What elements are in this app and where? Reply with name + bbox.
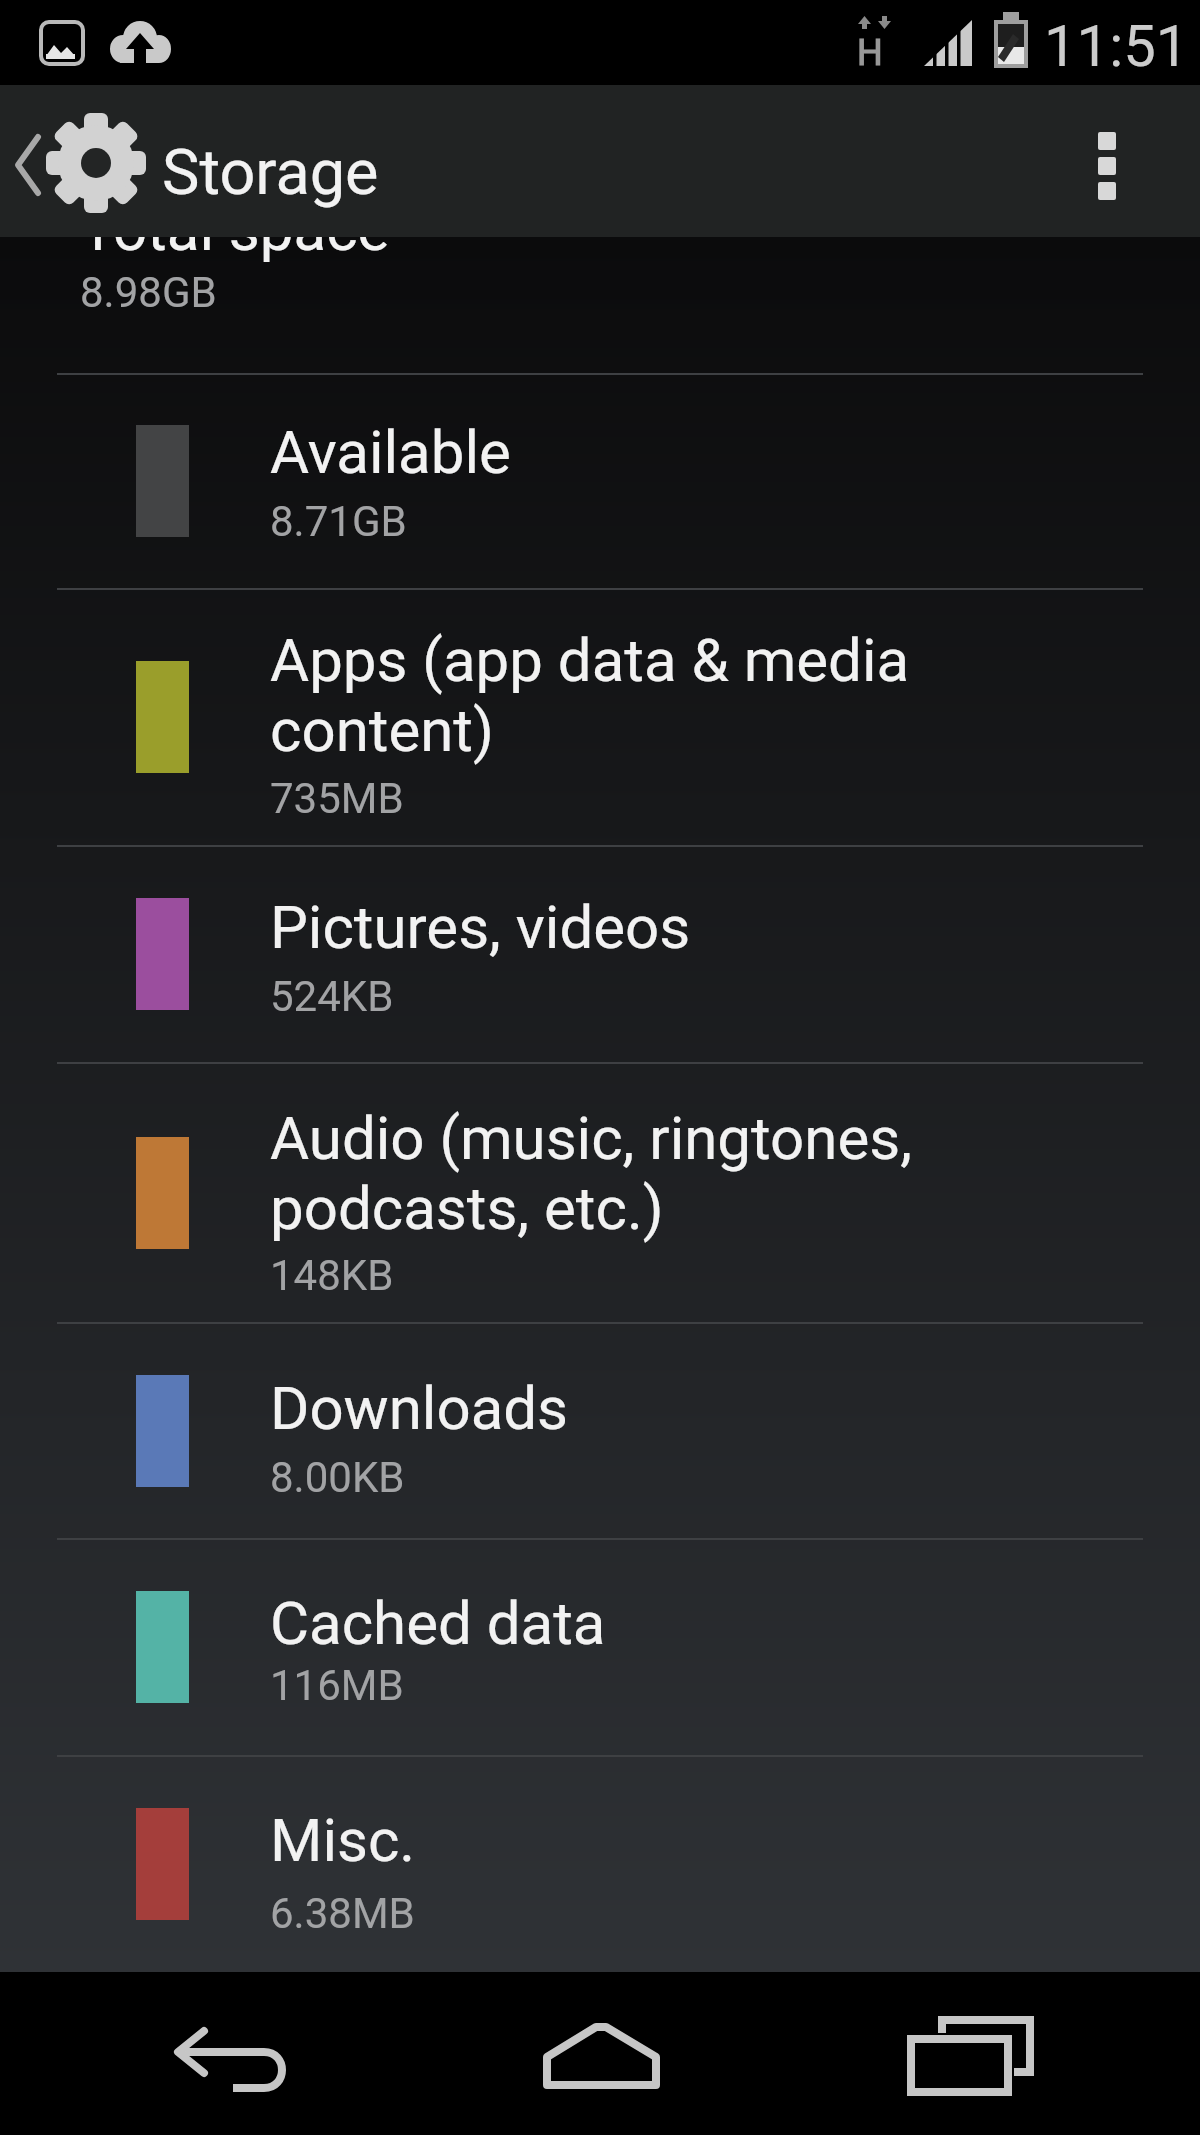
button[interactable]: Misc. <box>0 1757 1200 1972</box>
button[interactable]: Audio (music, ringtones, <box>0 1064 1200 1322</box>
staticText: Storage <box>162 136 379 210</box>
staticText: Total space <box>80 237 390 264</box>
button[interactable]: Pictures, videos <box>0 847 1200 1062</box>
staticText: 6.38MB <box>270 1889 415 1938</box>
button[interactable]: Downloads <box>0 1324 1200 1538</box>
staticText: Downloads <box>270 1373 569 1443</box>
staticText: 8.98GB <box>80 268 217 317</box>
button[interactable] <box>540 2020 664 2092</box>
staticText: Pictures, videos <box>270 892 691 962</box>
button[interactable] <box>1076 115 1138 215</box>
button[interactable] <box>170 2020 300 2100</box>
staticText: Available <box>270 417 511 487</box>
button[interactable] <box>905 2014 1035 2104</box>
button[interactable]: Cached data <box>0 1540 1200 1755</box>
button[interactable]: Available <box>0 375 1200 588</box>
staticText: Cached data <box>270 1588 606 1658</box>
staticText: 116MB <box>270 1661 404 1710</box>
staticText: Audio (music, ringtones, <box>270 1103 913 1173</box>
staticText: Apps (app data & media <box>270 625 910 695</box>
staticText: content) <box>270 695 494 765</box>
staticText: 8.00KB <box>270 1453 405 1502</box>
staticText: 8.71GB <box>270 497 407 546</box>
staticText: 148KB <box>270 1251 394 1300</box>
staticText: 524KB <box>270 972 394 1021</box>
staticText: H <box>857 32 883 74</box>
staticText: 11:51 <box>1044 12 1189 80</box>
button[interactable]: Apps (app data & media <box>0 590 1200 845</box>
button[interactable] <box>44 111 148 215</box>
staticText: 735MB <box>270 774 404 823</box>
staticText: podcasts, etc.) <box>270 1173 664 1243</box>
staticText: Misc. <box>270 1805 416 1875</box>
